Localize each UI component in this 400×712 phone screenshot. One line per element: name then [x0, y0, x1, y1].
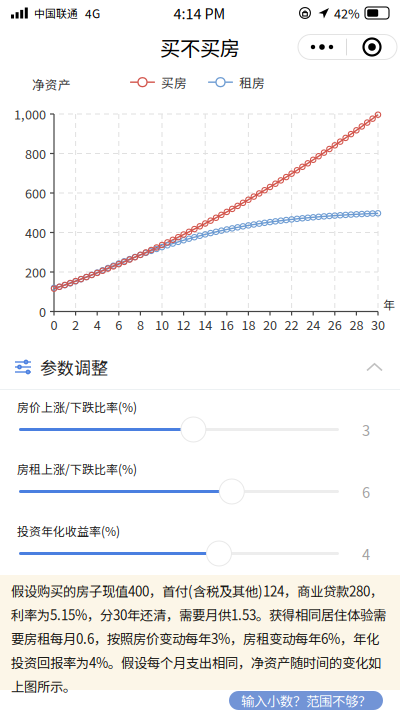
staticText: 16: [220, 315, 234, 334]
staticText: 投资年化收益率(%): [17, 522, 120, 539]
staticText: 买不买房: [160, 32, 240, 62]
staticText: 400: [25, 223, 46, 242]
staticText: 26: [328, 315, 342, 334]
staticText: 房价上涨/下跌比率(%): [17, 398, 137, 415]
staticText: 42%: [334, 4, 360, 22]
staticText: 4G: [85, 4, 100, 22]
staticText: 8: [137, 315, 144, 334]
staticText: 18: [241, 315, 255, 334]
staticText: 年: [383, 295, 395, 313]
staticText: 中国联通: [34, 5, 78, 21]
staticText: 800: [25, 144, 46, 163]
staticText: 24: [306, 315, 320, 334]
staticText: 10: [155, 315, 169, 334]
staticText: 租房: [239, 73, 265, 91]
staticText: 6: [362, 481, 370, 502]
staticText: 200: [25, 263, 46, 281]
staticText: 4: [362, 543, 370, 564]
staticText: 参数调整: [40, 355, 108, 379]
staticText: 房租上涨/下跌比率(%): [17, 460, 137, 477]
staticText: 30: [371, 315, 385, 334]
staticText: 净资产: [32, 75, 71, 93]
staticText: 14: [198, 315, 212, 334]
staticText: 输入小数？范围不够？: [241, 691, 371, 710]
staticText: 3: [362, 419, 370, 440]
staticText: 假设购买的房子现值400，首付(含税及其他)124，商业贷款280，利率为5.1…: [11, 581, 386, 695]
button[interactable]: More options: [298, 34, 397, 59]
staticText: 22: [285, 315, 299, 334]
staticText: 20: [263, 315, 277, 334]
staticText: 6: [115, 315, 122, 334]
button[interactable]: 输入小数？范围不够？: [229, 691, 383, 710]
staticText: 1,000: [14, 105, 46, 123]
staticText: 600: [25, 184, 46, 202]
staticText: 28: [349, 315, 363, 334]
staticText: 0: [50, 315, 57, 334]
button[interactable]: Collapse parameters: [358, 354, 391, 380]
staticText: 4: [94, 315, 101, 334]
staticText: 2: [72, 315, 79, 334]
staticText: 12: [177, 315, 191, 334]
staticText: 0: [39, 302, 46, 321]
staticText: 4:14 PM: [173, 3, 225, 23]
staticText: 买房: [161, 73, 187, 91]
